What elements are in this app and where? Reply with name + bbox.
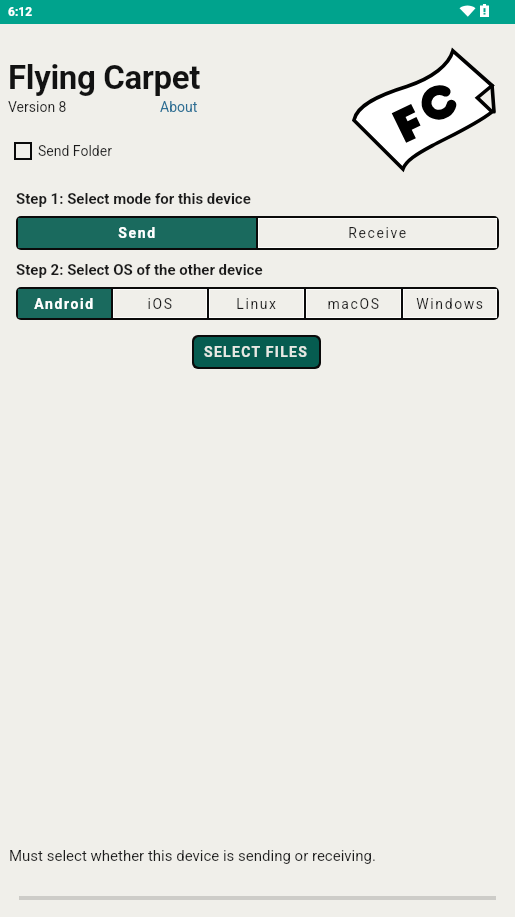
staticText: Send <box>118 225 157 241</box>
button[interactable]: Receive <box>259 219 496 247</box>
staticText: Must select whether this device is sendi… <box>9 847 376 865</box>
button[interactable]: Send <box>18 218 256 248</box>
staticText: Version 8 <box>8 99 67 115</box>
staticText: Android <box>34 296 95 312</box>
button[interactable]: iOS <box>114 290 206 317</box>
other: Flying Carpet logo <box>350 48 495 170</box>
button[interactable]: Send Folder <box>14 142 112 160</box>
staticText: Flying Carpet <box>8 58 201 97</box>
other: Wi-Fi <box>459 4 476 17</box>
staticText: Windows <box>416 296 485 312</box>
button[interactable]: SELECT FILES <box>194 337 319 367</box>
button[interactable]: macOS <box>307 290 400 317</box>
staticText: Send Folder <box>38 143 112 159</box>
staticText: Step 1: Select mode for this device <box>16 190 251 208</box>
staticText: SELECT FILES <box>204 344 309 360</box>
button[interactable]: Android <box>18 289 111 318</box>
staticText: 6:12 <box>8 5 33 19</box>
staticText: Linux <box>236 296 278 312</box>
staticText: Step 2: Select OS of the other device <box>16 261 263 279</box>
button[interactable]: Windows <box>404 290 496 317</box>
staticText: iOS <box>147 296 174 312</box>
staticText: macOS <box>327 296 381 312</box>
other: Battery <box>480 4 489 17</box>
button[interactable]: Linux <box>210 290 303 317</box>
staticText: Receive <box>348 225 408 241</box>
button[interactable]: About <box>160 99 198 115</box>
